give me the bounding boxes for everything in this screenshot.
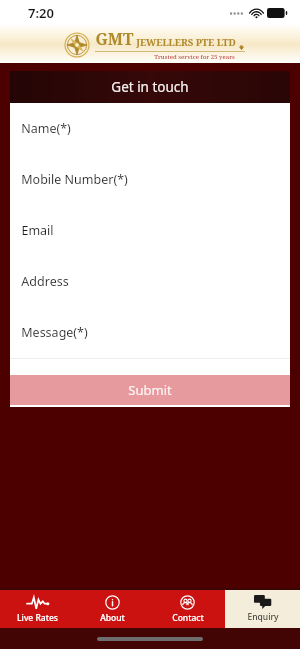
button[interactable]: Email bbox=[10, 205, 290, 256]
button[interactable]: About bbox=[75, 590, 150, 628]
staticText: GMT bbox=[95, 28, 134, 50]
staticText: JEWELLERS PTE LTD bbox=[136, 36, 236, 49]
button[interactable]: Submit bbox=[10, 375, 290, 405]
staticText: Message(*) bbox=[21, 324, 88, 341]
staticText: Mobile Number(*) bbox=[21, 171, 128, 188]
button[interactable]: Enquiry bbox=[225, 590, 300, 628]
staticText: Submit bbox=[128, 381, 172, 399]
staticText: Contact bbox=[172, 612, 204, 624]
staticText: Email bbox=[21, 222, 54, 239]
staticText: Enquiry bbox=[247, 611, 279, 623]
button[interactable]: Contact bbox=[150, 590, 225, 628]
button[interactable]: Mobile Number(*) bbox=[10, 154, 290, 205]
button[interactable]: Name(*) bbox=[10, 103, 290, 154]
staticText: Get in touch bbox=[111, 78, 189, 96]
staticText: About bbox=[100, 612, 125, 624]
button[interactable]: Live Rates bbox=[0, 590, 75, 628]
staticText: Trusted service for 25 years bbox=[154, 53, 235, 61]
staticText: Live Rates bbox=[17, 612, 58, 624]
button[interactable]: Address bbox=[10, 256, 290, 307]
button[interactable]: Message(*) bbox=[10, 307, 290, 358]
staticText: 7:20 bbox=[28, 4, 54, 22]
staticText: Name(*) bbox=[21, 120, 71, 137]
staticText: Address bbox=[21, 273, 69, 290]
